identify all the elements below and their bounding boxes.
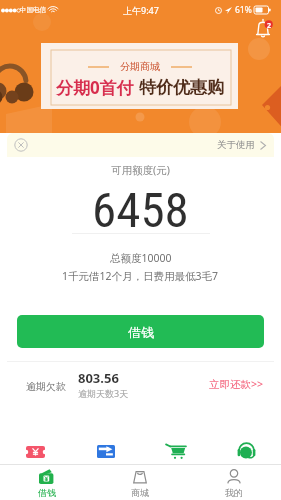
staticText: 我的 bbox=[225, 487, 243, 498]
staticText: 总额度10000 bbox=[110, 251, 172, 265]
staticText: 可用额度(元) bbox=[111, 163, 170, 177]
staticText: 中国电信 bbox=[20, 6, 46, 14]
staticText: 分期商城 bbox=[120, 60, 160, 73]
button[interactable]: Notifications bbox=[254, 18, 274, 38]
staticText: 逾期天数3天 bbox=[78, 387, 129, 399]
button[interactable]: Card bbox=[71, 439, 141, 464]
staticText: 1千元借12个月，日费用最低3毛7 bbox=[62, 269, 219, 283]
staticText: 上午9:47 bbox=[123, 4, 159, 16]
button[interactable]: 立即还款>> bbox=[209, 362, 264, 405]
staticText: 借钱 bbox=[128, 324, 154, 340]
staticText: 分期0首付 bbox=[56, 76, 134, 99]
staticText: 关于使用 bbox=[217, 139, 255, 151]
staticText: 逾期欠款 bbox=[26, 380, 66, 393]
button[interactable]: 我的 bbox=[187, 469, 281, 500]
staticText: 6458 bbox=[92, 182, 189, 227]
button[interactable]: Coupon bbox=[0, 439, 71, 464]
staticText: 803.56 bbox=[78, 369, 119, 387]
staticText: 2 bbox=[267, 21, 272, 31]
button[interactable]: 借钱 bbox=[0, 469, 93, 500]
button[interactable]: Support bbox=[211, 439, 281, 464]
staticText: 立即还款>> bbox=[209, 377, 264, 391]
staticText: 商城 bbox=[131, 487, 149, 498]
button[interactable]: 关于使用 bbox=[217, 133, 274, 157]
staticText: 61% bbox=[235, 4, 252, 16]
staticText: 特价优惠购 bbox=[139, 77, 224, 98]
staticText: 借钱 bbox=[38, 487, 56, 498]
button[interactable]: Close bbox=[14, 138, 28, 152]
button[interactable]: 商城 bbox=[93, 469, 187, 500]
button[interactable]: 分期商城 bbox=[41, 43, 238, 109]
button[interactable]: Cart bbox=[141, 439, 211, 464]
button[interactable]: 借钱 bbox=[17, 315, 264, 348]
